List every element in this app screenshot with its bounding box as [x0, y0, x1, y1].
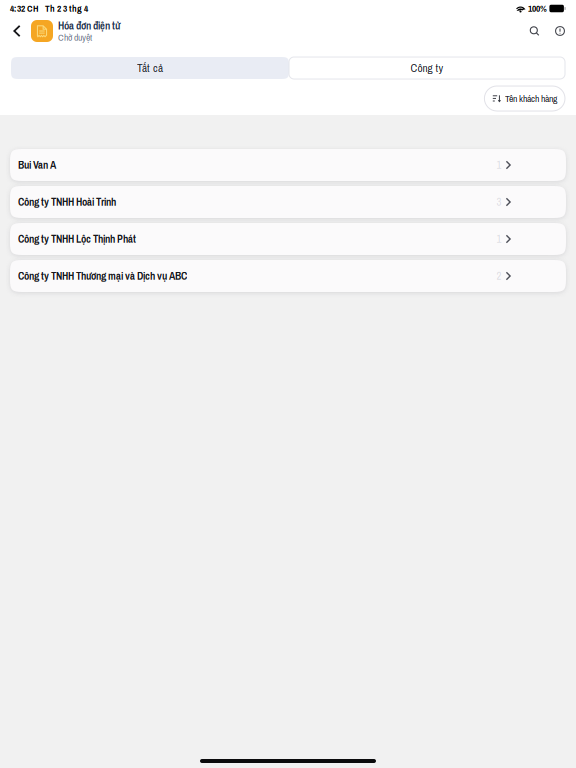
- button[interactable]: Công ty TNHH Hoài Trinh: [10, 186, 566, 218]
- button[interactable]: Tất cả: [11, 57, 289, 79]
- staticText: Công ty TNHH Thương mại và Dịch vụ ABC: [18, 269, 187, 283]
- staticText: Hóa đơn điện tử: [58, 18, 120, 33]
- staticText: Tất cả: [137, 60, 163, 76]
- button[interactable]: Tên khách hàng: [484, 86, 565, 111]
- button[interactable]: Bui Van A: [10, 149, 566, 181]
- button[interactable]: Back: [6, 18, 28, 44]
- staticText: Th 2 3 thg 4: [39, 2, 88, 15]
- staticText: 3: [497, 195, 502, 209]
- staticText: Bui Van A: [18, 158, 56, 172]
- staticText: 4:32 CH: [10, 2, 39, 15]
- button[interactable]: Công ty TNHH Lộc Thịnh Phát: [10, 223, 566, 255]
- staticText: 100%: [526, 2, 547, 15]
- button[interactable]: Công ty TNHH Thương mại và Dịch vụ ABC: [10, 260, 566, 292]
- staticText: 1: [497, 158, 502, 172]
- staticText: Công ty TNHH Lộc Thịnh Phát: [18, 232, 136, 246]
- button[interactable]: Information: [548, 18, 572, 44]
- staticText: Công ty: [410, 60, 443, 76]
- staticText: 1: [497, 232, 502, 246]
- button[interactable]: Công ty: [289, 57, 565, 79]
- staticText: 2: [497, 269, 502, 283]
- staticText: Tên khách hàng: [505, 92, 557, 105]
- button[interactable]: Search: [521, 18, 548, 44]
- staticText: Chờ duyệt: [58, 31, 92, 44]
- staticText: Công ty TNHH Hoài Trinh: [18, 195, 116, 209]
